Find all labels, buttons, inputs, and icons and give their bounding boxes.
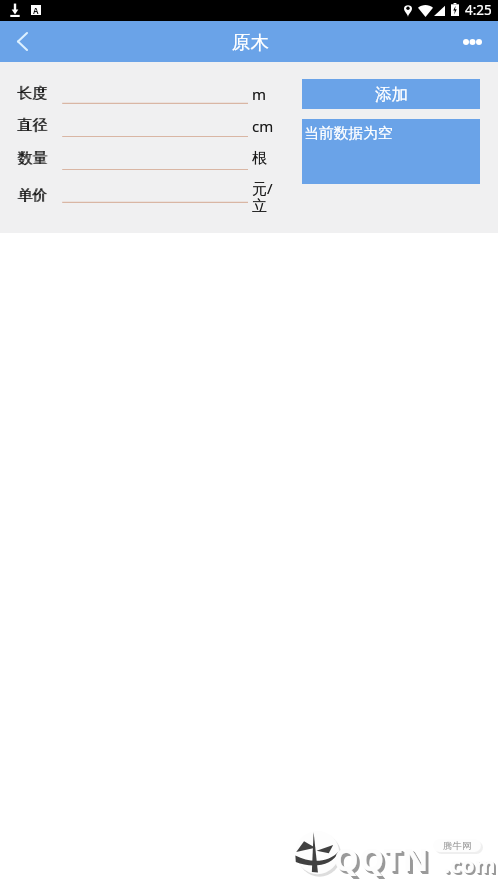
staticText: m (252, 84, 267, 104)
button[interactable]: 当前数据为空 (302, 119, 480, 184)
button[interactable]: More options (452, 21, 492, 62)
staticText: 根 (252, 149, 267, 168)
staticText: 根 (252, 149, 267, 168)
staticText: 单价 (17, 186, 47, 205)
staticText: .com (445, 852, 497, 881)
staticText: 长度 (18, 84, 48, 103)
staticText: QQTN (337, 841, 433, 883)
staticText: .com (444, 851, 496, 880)
staticText: QQTN (334, 838, 430, 880)
staticText: 长度 (17, 84, 47, 103)
staticText: m (252, 84, 267, 104)
staticText: 元/ 立 (252, 178, 273, 215)
staticText: 原木 (232, 31, 269, 54)
staticText: cm (252, 116, 274, 136)
button[interactable]: 单价 输入框 (62, 183, 248, 203)
staticText: cm (252, 116, 274, 136)
staticText: 直径 (18, 116, 48, 135)
staticText: A (33, 5, 39, 15)
staticText: 直径 (17, 116, 47, 135)
button[interactable]: 添加 (302, 79, 480, 109)
staticText: 元/ 立 (252, 178, 273, 215)
button[interactable]: 数量 输入框 (62, 151, 248, 171)
button[interactable]: 直径 输入框 (62, 118, 248, 138)
staticText: 添加 (375, 84, 408, 105)
button[interactable]: 长度 输入框 (62, 84, 248, 104)
staticText: QQTN (336, 840, 432, 882)
staticText: 4:25 (465, 1, 492, 19)
staticText: 数量 (18, 149, 48, 168)
staticText: 当前数据为空 (304, 124, 393, 143)
button[interactable]: Back (0, 21, 45, 62)
staticText: .com (446, 853, 498, 882)
staticText: 单价 (18, 186, 48, 205)
staticText: 腾牛网 (443, 840, 472, 852)
staticText: 数量 (17, 149, 47, 168)
